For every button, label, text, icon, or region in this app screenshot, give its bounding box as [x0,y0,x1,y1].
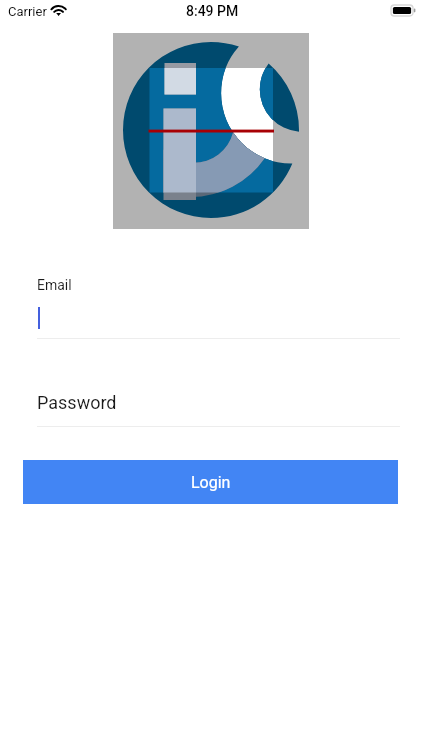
staticText: Carrier [8,4,47,19]
other: Battery [391,5,416,16]
button[interactable]: Password [37,392,400,427]
button[interactable]: Login [23,460,398,504]
other: Wi-Fi [50,3,68,17]
staticText: Password [37,392,117,413]
staticText: 8:49 PM [186,3,239,19]
staticText: Login [191,473,231,492]
button[interactable] [37,300,400,339]
staticText: Email [37,277,72,293]
